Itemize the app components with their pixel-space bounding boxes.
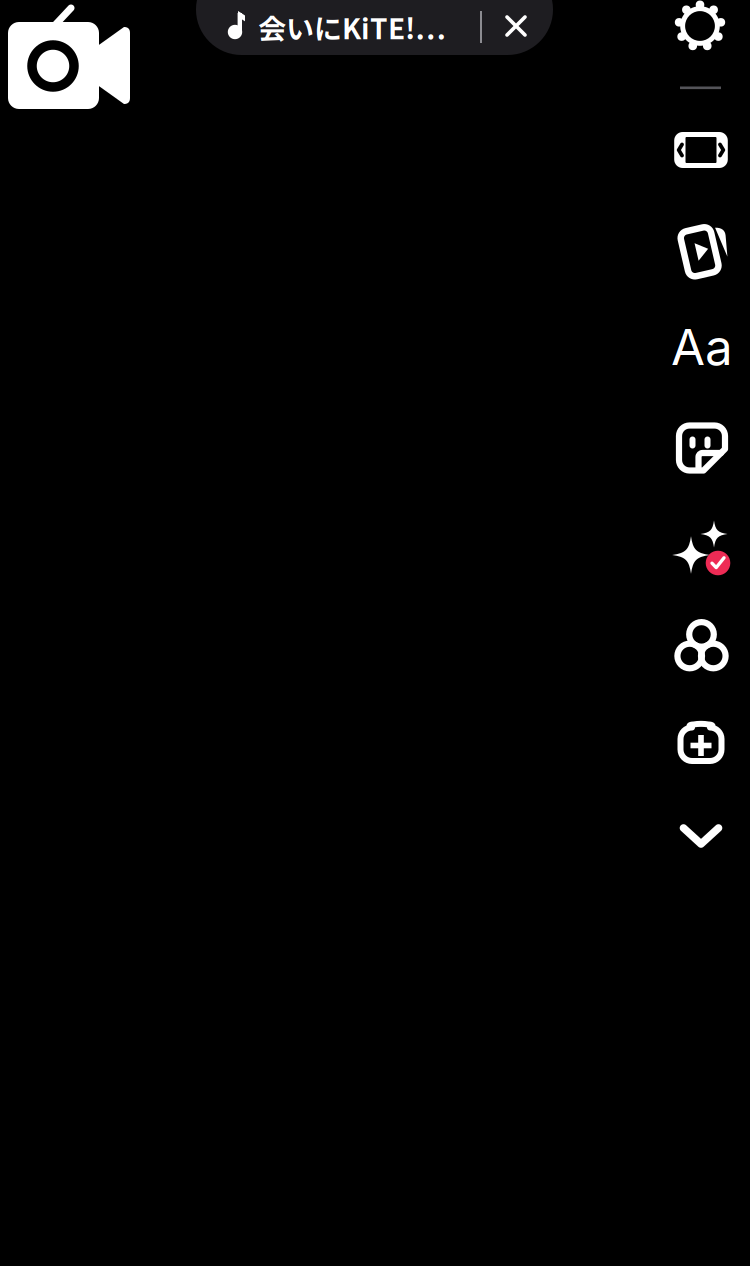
button[interactable]: Settings [672, 0, 728, 54]
button[interactable]: Filters [673, 618, 729, 674]
button[interactable]: Collapse tools [673, 807, 729, 863]
button[interactable]: Enhance [669, 522, 725, 578]
button[interactable]: Record [0, 0, 140, 120]
staticText: 会いにKiTE!… [258, 7, 446, 47]
button[interactable]: Templates [675, 223, 731, 279]
button[interactable]: Stickers [674, 420, 730, 476]
button[interactable]: Aspect ratio [673, 122, 729, 178]
button[interactable]: 会いにKiTE!… [196, 0, 553, 55]
button[interactable]: Add overlay [673, 715, 729, 771]
button[interactable]: Text [667, 319, 737, 375]
staticText: Aa [671, 317, 733, 377]
